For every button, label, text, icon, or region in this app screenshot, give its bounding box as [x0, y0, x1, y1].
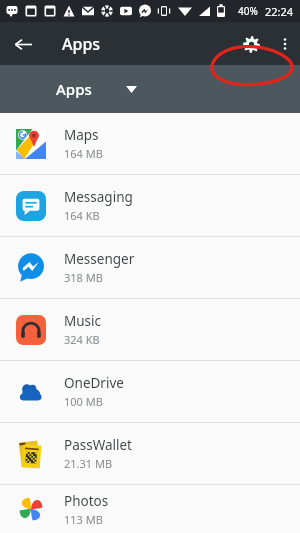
staticText: 324 KB — [64, 332, 100, 347]
staticText: Music — [64, 312, 102, 330]
button[interactable]: Photos — [0, 485, 300, 533]
staticText: Messenger — [64, 250, 135, 268]
button[interactable]: OneDrive — [0, 361, 300, 422]
staticText: Photos — [64, 492, 109, 510]
staticText: 100 MB — [64, 394, 103, 409]
staticText: 22:24 — [265, 4, 294, 19]
staticText: OneDrive — [64, 374, 124, 392]
staticText: Apps — [62, 33, 101, 55]
button[interactable]: Apps — [56, 79, 137, 99]
button[interactable]: More options — [270, 29, 300, 59]
staticText: Maps — [64, 126, 99, 144]
staticText: Messaging — [64, 188, 133, 206]
staticText: Apps — [56, 79, 92, 99]
button[interactable]: Messenger — [0, 237, 300, 298]
button[interactable]: Maps — [0, 113, 300, 174]
staticText: 21.31 MB — [64, 456, 113, 471]
staticText: 318 MB — [64, 270, 103, 285]
staticText: 164 KB — [64, 208, 100, 223]
button[interactable]: Messaging — [0, 175, 300, 236]
staticText: 40% — [238, 4, 258, 18]
staticText: 113 MB — [64, 512, 103, 527]
button[interactable]: Settings — [234, 27, 268, 61]
button[interactable]: PassWallet — [0, 423, 300, 484]
staticText: PassWallet — [64, 436, 132, 454]
staticText: 164 MB — [64, 146, 103, 161]
button[interactable]: Back — [6, 27, 40, 61]
button[interactable]: Music — [0, 299, 300, 360]
